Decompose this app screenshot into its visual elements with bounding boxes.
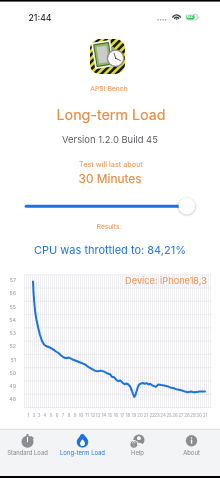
staticText: 54 <box>0 317 16 323</box>
staticText: Results: <box>0 223 219 231</box>
staticText: 56 <box>0 290 16 296</box>
staticText: 48 <box>0 396 16 402</box>
staticText: 50 <box>0 370 16 376</box>
staticText: 1 <box>22 413 34 418</box>
staticText: 28 <box>181 413 193 418</box>
staticText: Standard Load <box>0 449 55 456</box>
staticText: 62 <box>80 14 220 20</box>
staticText: 19 <box>128 413 140 418</box>
staticText: 4 <box>39 413 51 418</box>
button[interactable]: About <box>164 430 219 478</box>
staticText: 31 <box>199 413 211 418</box>
staticText: 52 <box>0 343 16 349</box>
staticText: 17 <box>116 413 128 418</box>
staticText: 25 <box>163 413 175 418</box>
staticText: 13 <box>92 413 104 418</box>
staticText: 55 <box>0 304 16 310</box>
staticText: 14 <box>98 413 110 418</box>
staticText: 30 <box>193 413 205 418</box>
staticText: 24 <box>157 413 169 418</box>
staticText: 2 <box>28 413 40 418</box>
staticText: 20 <box>134 413 146 418</box>
staticText: 8 <box>63 413 75 418</box>
staticText: 49 <box>0 383 16 389</box>
staticText: APSI Bench <box>0 84 219 92</box>
staticText: 23 <box>151 413 163 418</box>
button[interactable]: Long-term Load <box>55 430 110 478</box>
staticText: 21:44 <box>0 13 150 23</box>
staticText: 11 <box>81 413 93 418</box>
staticText: Version 1.2.0 Build 45 <box>0 134 220 145</box>
staticText: 53 <box>0 330 16 336</box>
staticText: Device: iPhone18,3 <box>56 275 220 286</box>
staticText: Long-term Load <box>55 449 110 456</box>
staticText: 18 <box>122 413 134 418</box>
button[interactable]: Help <box>110 430 165 478</box>
staticText: 10 <box>75 413 87 418</box>
staticText: 29 <box>187 413 199 418</box>
staticText: 7 <box>57 413 69 418</box>
staticText: About <box>164 449 219 456</box>
staticText: 6 <box>51 413 63 418</box>
staticText: Long-term Load <box>1 106 220 123</box>
staticText: 5 <box>45 413 57 418</box>
staticText: 57 <box>0 277 16 283</box>
button[interactable]: Test duration slider <box>18 195 202 217</box>
staticText: 3 <box>33 413 45 418</box>
staticText: 12 <box>87 413 99 418</box>
staticText: 30 Minutes <box>0 171 220 185</box>
staticText: 15 <box>104 413 116 418</box>
staticText: 9 <box>69 413 81 418</box>
staticText: Help <box>110 449 165 456</box>
staticText: 26 <box>169 413 181 418</box>
staticText: 27 <box>175 413 187 418</box>
staticText: 51 <box>0 357 16 363</box>
staticText: 21 <box>140 413 152 418</box>
button[interactable]: Standard Load <box>0 430 55 478</box>
staticText: Test will last about <box>1 160 220 169</box>
staticText: CPU was throttled to: 84,21% <box>0 243 220 256</box>
other: APSI Bench app icon <box>90 39 125 74</box>
staticText: 16 <box>110 413 122 418</box>
staticText: 22 <box>146 413 158 418</box>
